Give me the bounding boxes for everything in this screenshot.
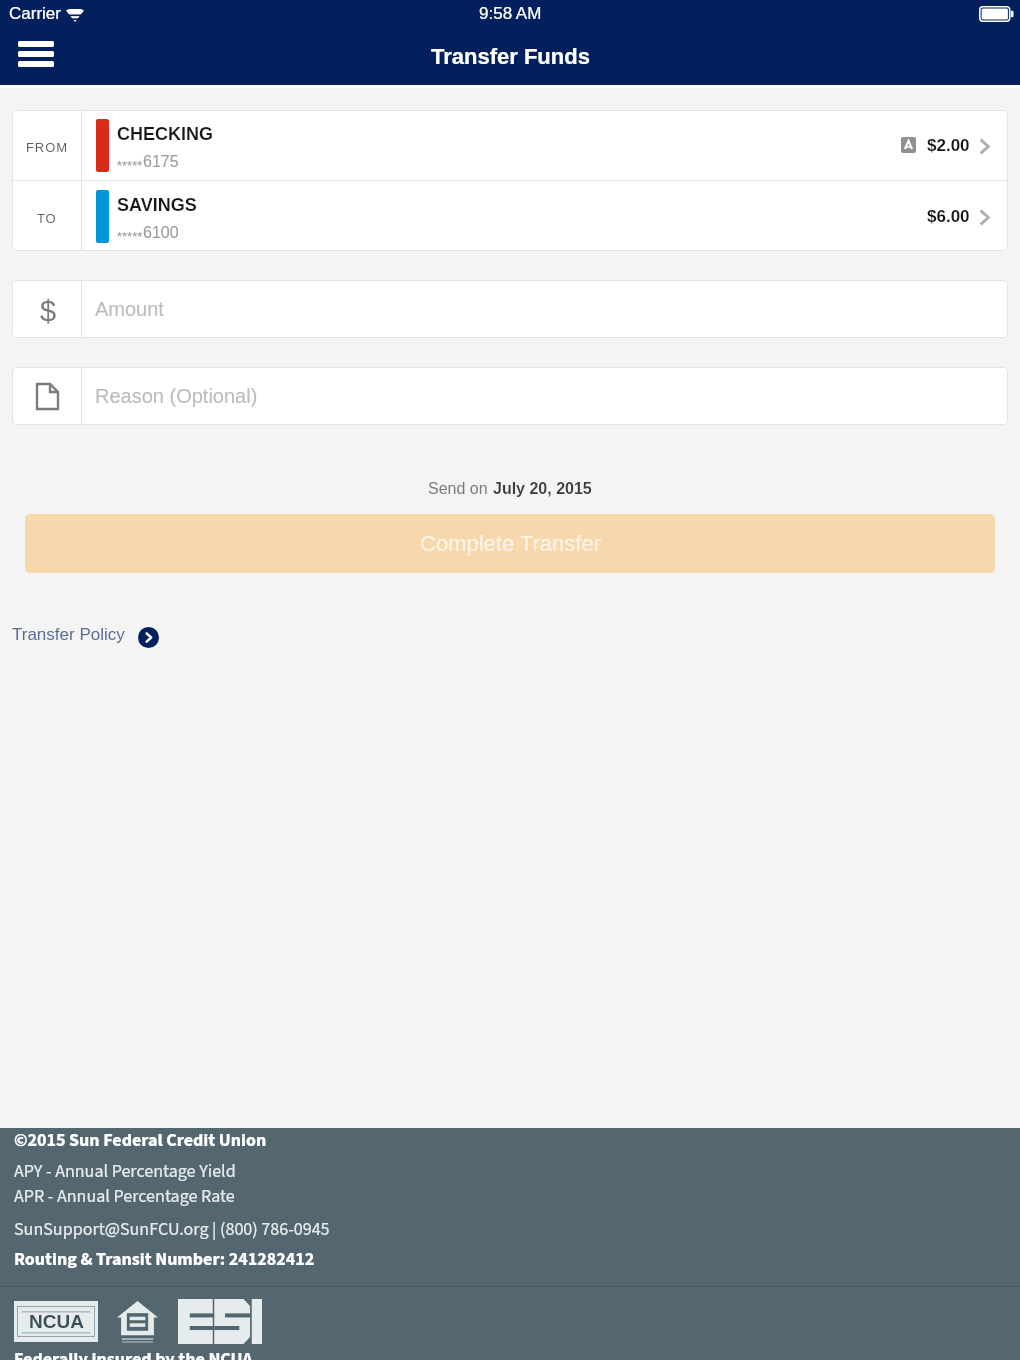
button[interactable]: TO xyxy=(12,181,1008,251)
staticText: SunSupport@SunFCU.org | (800) 786-0945 xyxy=(14,1217,330,1243)
button[interactable]: Reason (Optional) xyxy=(12,367,1008,425)
staticText: Transfer Policy xyxy=(12,625,125,644)
staticText: TO xyxy=(37,211,57,226)
staticText: Send on xyxy=(428,480,493,498)
button[interactable]: Complete Transfer xyxy=(25,514,995,573)
staticText: Transfer Funds xyxy=(431,44,590,69)
button[interactable]: FROM xyxy=(12,110,1008,180)
staticText: 6175 xyxy=(143,153,179,171)
button[interactable]: Transfer Policy xyxy=(12,624,159,645)
staticText: Complete Transfer xyxy=(420,531,601,556)
staticText: NCUA xyxy=(29,1311,84,1332)
staticText: Amount xyxy=(95,298,164,320)
staticText: ***** xyxy=(117,229,143,244)
staticText: APR - Annual Percentage Rate xyxy=(14,1184,235,1210)
staticText: 6100 xyxy=(143,224,179,242)
staticText: $6.00 xyxy=(927,207,970,226)
staticText: FROM xyxy=(26,140,68,155)
staticText: July 20, 2015 xyxy=(493,480,592,498)
staticText: $2.00 xyxy=(927,136,970,155)
button[interactable]: Open navigation menu xyxy=(0,29,62,85)
staticText: APY - Annual Percentage Yield xyxy=(14,1159,236,1185)
staticText: Routing & Transit Number: 241282412 xyxy=(14,1247,315,1273)
staticText: Carrier xyxy=(9,4,61,23)
staticText: SAVINGS xyxy=(117,195,197,215)
staticText: Reason (Optional) xyxy=(95,385,258,407)
staticText: ***** xyxy=(117,158,143,173)
staticText: ©2015 Sun Federal Credit Union xyxy=(14,1128,267,1154)
button[interactable]: $ xyxy=(12,280,1008,338)
staticText: $ xyxy=(40,295,57,327)
staticText: CHECKING xyxy=(117,124,214,144)
staticText: 9:58 AM xyxy=(479,4,542,23)
staticText: Federally insured by the NCUA xyxy=(14,1347,253,1360)
